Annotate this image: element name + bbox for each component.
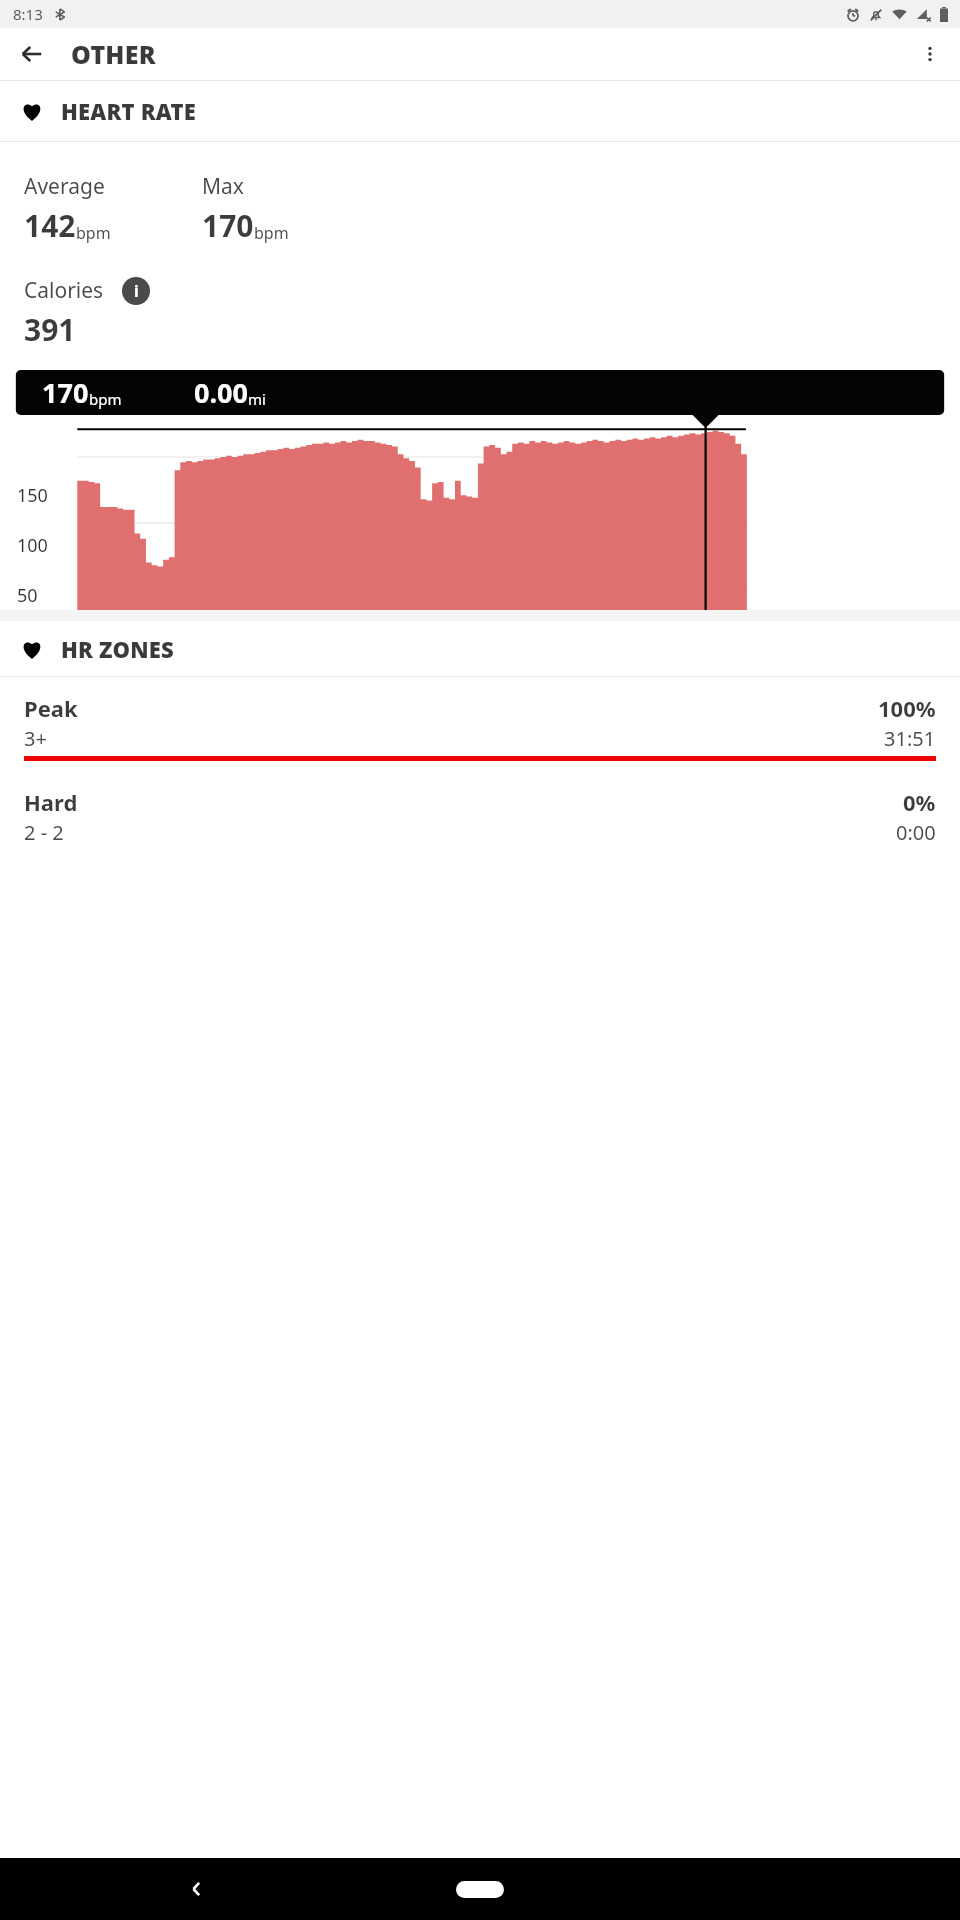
staticText: Hard [24,787,78,817]
button[interactable]: Hard [0,787,960,855]
button[interactable]: Back [10,32,54,76]
staticText: 0.00 [194,374,248,411]
button[interactable]: Home [456,1881,504,1898]
staticText: OTHER [71,37,156,71]
staticText: 0:00 [896,819,936,846]
staticText: 170 [42,374,89,411]
staticText: 2 - 2 [24,819,64,846]
staticText: 100 [17,533,48,558]
staticText: Peak [24,693,78,723]
staticText: mi [248,389,266,409]
staticText: HR ZONES [61,634,174,664]
staticText: 100% [878,693,936,723]
button[interactable]: HR ZONES [0,621,960,676]
button[interactable]: Peak [0,693,960,761]
staticText: 31:51 [884,725,936,752]
button[interactable]: More options [908,32,952,76]
staticText: bpm [76,222,111,244]
button[interactable]: Calories info [122,277,150,305]
staticText: Max [202,172,244,201]
staticText: bpm [254,222,289,244]
staticText: 391 [24,309,76,350]
staticText: bpm [89,389,122,409]
staticText: 142 [24,205,76,246]
button[interactable]: Back [175,1867,219,1911]
staticText: Calories [24,276,104,305]
staticText: 150 [17,483,48,508]
button[interactable]: HEART RATE [0,81,960,141]
staticText: i [134,280,139,302]
staticText: 50 [17,583,38,608]
staticText: Average [24,172,105,201]
staticText: 0% [903,787,936,817]
staticText: 8:13 [13,4,43,24]
staticText: 3+ [24,725,47,752]
staticText: 170 [202,205,254,246]
staticText: HEART RATE [61,96,196,126]
